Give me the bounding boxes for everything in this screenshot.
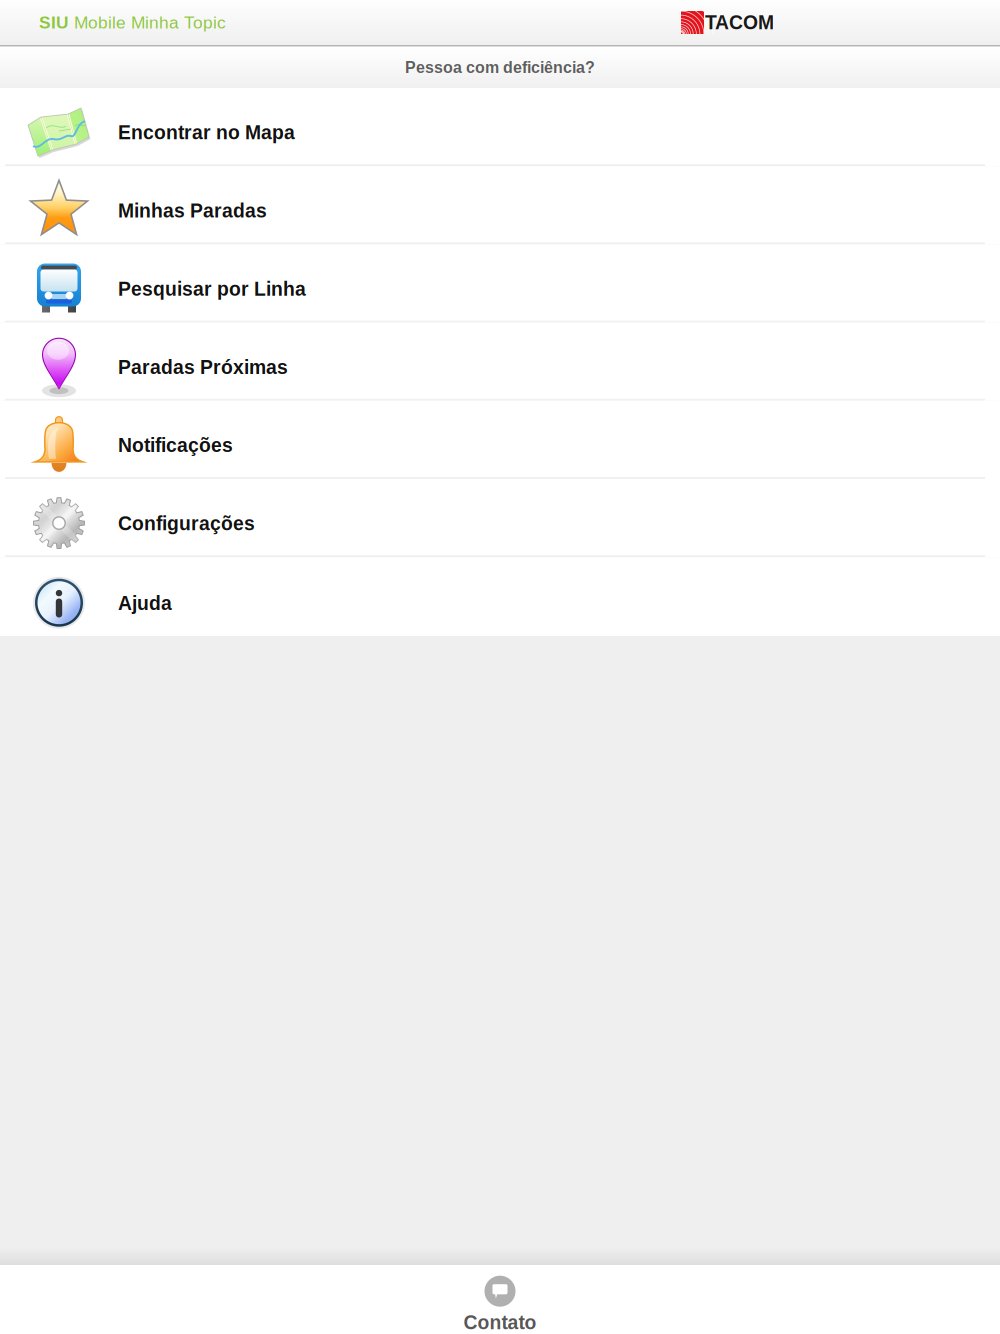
button[interactable]: Minhas Paradas	[0, 166, 1000, 244]
staticText: Notificações	[118, 435, 233, 456]
staticText: Contato	[463, 1312, 536, 1333]
staticText: Minhas Paradas	[118, 200, 267, 222]
staticText: Pesquisar por Linha	[118, 278, 306, 300]
staticText: Paradas Próximas	[118, 356, 288, 378]
staticText: Ajuda	[118, 592, 172, 614]
staticText: Encontrar no Mapa	[118, 122, 295, 143]
button[interactable]: Encontrar no Mapa	[0, 88, 1000, 166]
button[interactable]: Ajuda	[0, 557, 1000, 636]
button[interactable]: Pessoa com deficiência?	[0, 47, 1000, 88]
staticText: Mobile Minha Topic	[69, 13, 226, 32]
staticText: Pessoa com deficiência?	[405, 59, 595, 76]
staticText: Configurações	[118, 513, 255, 534]
staticText: TACOM	[705, 12, 774, 33]
button[interactable]: SIU	[0, 7, 226, 38]
button[interactable]: Paradas Próximas	[0, 323, 1000, 401]
button[interactable]: Notificações	[0, 401, 1000, 479]
staticText: SIU	[39, 13, 69, 32]
button[interactable]: Contato	[0, 1265, 1000, 1334]
button[interactable]: Configurações	[0, 479, 1000, 557]
button[interactable]: Pesquisar por Linha	[0, 244, 1000, 323]
